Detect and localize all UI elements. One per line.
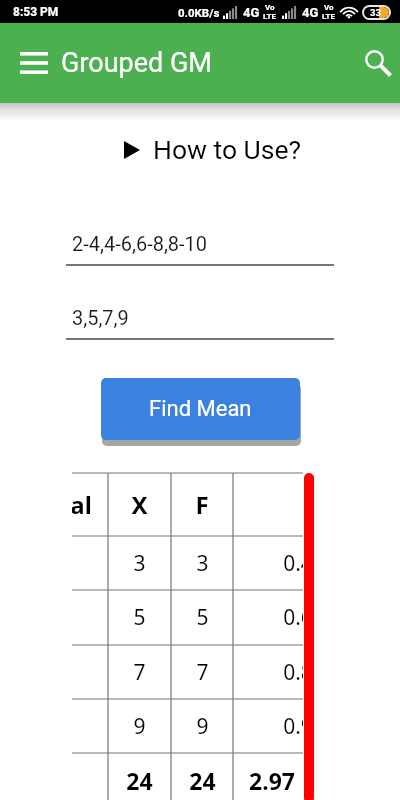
staticText: 0.0KB/s — [178, 6, 220, 19]
staticText: 24 — [189, 765, 216, 796]
staticText: 8:53 PM — [13, 5, 59, 19]
staticText: 3 — [196, 549, 209, 578]
staticText: 5 — [196, 603, 209, 632]
staticText: LTE — [322, 12, 335, 21]
staticText: 0.972 — [283, 712, 303, 741]
staticText: 24 — [126, 765, 153, 796]
button[interactable]: Search — [354, 41, 398, 85]
staticText: 2-4,4-6,6-8,8-10 — [72, 232, 208, 255]
staticText: X — [131, 488, 148, 521]
staticText: Vo — [324, 3, 334, 12]
staticText: 4G — [302, 5, 319, 20]
staticText: F — [195, 488, 209, 521]
staticText: Vo — [265, 3, 275, 12]
staticText: Grouped GM — [61, 47, 212, 79]
button[interactable]: Find Mean — [101, 378, 300, 440]
staticText: 5 — [133, 603, 146, 632]
staticText: 3,5,7,9 — [72, 306, 129, 329]
staticText: 7 — [133, 658, 146, 687]
staticText: 9 — [196, 712, 209, 741]
staticText: 7 — [196, 658, 209, 687]
staticText: How to Use? — [153, 134, 302, 165]
staticText: 3 — [133, 549, 146, 578]
staticText: LTE — [263, 12, 276, 21]
button[interactable]: Open navigation menu — [13, 42, 55, 84]
staticText: 9 — [133, 712, 146, 741]
staticText: 33 — [370, 7, 381, 18]
staticText: 4G — [243, 5, 260, 20]
staticText: 2.97 — [249, 765, 295, 796]
button[interactable]: How to Use? — [0, 117, 400, 181]
staticText: 0.625 — [283, 603, 303, 632]
staticText: 0.875 — [283, 658, 303, 687]
staticText: Find Mean — [149, 396, 252, 422]
staticText: Interval — [72, 488, 92, 521]
staticText: 0.416 — [283, 549, 303, 578]
